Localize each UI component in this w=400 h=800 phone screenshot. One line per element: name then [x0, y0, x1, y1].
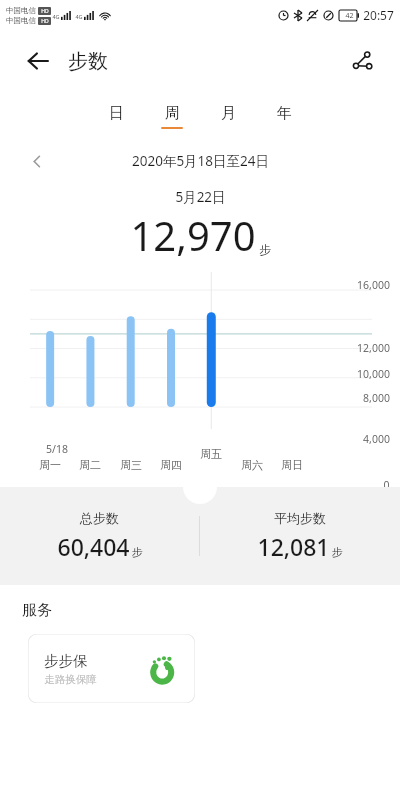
- staticText: 步数: [68, 49, 108, 74]
- staticText: 60,404: [57, 531, 130, 562]
- staticText: 8,000: [363, 391, 390, 405]
- staticText: 12,081: [257, 531, 330, 562]
- staticText: 5/18: [46, 442, 68, 456]
- staticText: 5月22日: [175, 188, 226, 206]
- button[interactable]: 周: [156, 104, 188, 129]
- staticText: 12,970: [130, 208, 256, 262]
- button[interactable]: 步步保: [28, 634, 195, 703]
- button[interactable]: 年: [268, 104, 300, 129]
- staticText: 周四: [160, 458, 182, 472]
- staticText: 中国电信: [6, 16, 36, 25]
- staticText: 周一: [39, 458, 61, 472]
- staticText: HD: [41, 8, 49, 15]
- staticText: 年: [277, 104, 292, 123]
- staticText: 周六: [241, 458, 263, 472]
- button[interactable]: 日: [100, 104, 132, 129]
- staticText: 4G: [75, 13, 83, 20]
- staticText: 步: [259, 242, 271, 257]
- button[interactable]: 平均步数: [200, 510, 400, 562]
- staticText: 中国电信: [6, 6, 36, 15]
- staticText: 步: [132, 545, 143, 559]
- staticText: 周五: [200, 447, 222, 461]
- staticText: 步步保: [44, 652, 88, 670]
- staticText: 周: [165, 104, 180, 123]
- button[interactable]: Back: [18, 41, 58, 81]
- staticText: 月: [221, 104, 236, 123]
- staticText: 4G: [52, 13, 60, 20]
- staticText: 10,000: [357, 367, 390, 381]
- staticText: 服务: [22, 601, 52, 620]
- staticText: 平均步数: [274, 510, 326, 526]
- staticText: HD: [41, 18, 49, 25]
- staticText: 4,000: [363, 432, 390, 446]
- staticText: 20:57: [363, 7, 394, 23]
- button[interactable]: 总步数: [0, 510, 199, 562]
- staticText: 步: [332, 545, 343, 559]
- staticText: 周日: [281, 458, 303, 472]
- button[interactable]: Share: [342, 41, 382, 81]
- staticText: 2020年5月18日至24日: [132, 152, 269, 170]
- staticText: 走路换保障: [44, 673, 97, 686]
- staticText: 12,000: [357, 341, 390, 355]
- staticText: 周二: [79, 458, 101, 472]
- staticText: 16,000: [357, 278, 390, 292]
- button[interactable]: Previous week: [22, 146, 52, 176]
- staticText: 总步数: [80, 510, 119, 526]
- button[interactable]: Drag handle: [183, 470, 217, 504]
- staticText: 周三: [120, 458, 142, 472]
- staticText: 42: [345, 11, 354, 21]
- staticText: 0: [383, 478, 390, 487]
- button[interactable]: 月: [212, 104, 244, 129]
- staticText: 日: [109, 104, 124, 123]
